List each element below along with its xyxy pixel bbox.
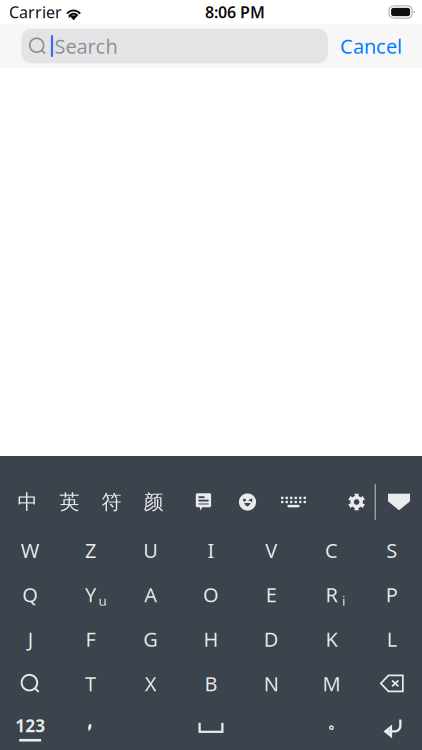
button[interactable]: 中 xyxy=(6,476,48,528)
staticText: M xyxy=(323,670,341,697)
staticText: i xyxy=(342,592,345,609)
staticText: Carrier xyxy=(9,1,62,23)
staticText: G xyxy=(143,626,158,652)
button[interactable]: I xyxy=(181,528,241,572)
button[interactable]: X xyxy=(121,661,181,706)
button[interactable]: N xyxy=(241,661,301,706)
button[interactable]: Y xyxy=(60,572,121,617)
staticText: Z xyxy=(85,537,96,563)
button[interactable]: Comma xyxy=(60,706,121,750)
button[interactable]: Q xyxy=(0,572,60,617)
button[interactable]: J xyxy=(0,617,60,661)
staticText: O xyxy=(203,581,219,608)
staticText: u xyxy=(98,592,106,609)
staticText: A xyxy=(144,581,157,608)
button[interactable]: P xyxy=(362,572,422,617)
staticText: 123 xyxy=(15,714,45,737)
button[interactable]: S xyxy=(362,528,422,572)
staticText: H xyxy=(203,626,218,652)
button[interactable]: 英 xyxy=(48,476,90,528)
staticText: D xyxy=(264,626,279,652)
staticText: 颜 xyxy=(143,490,163,514)
staticText: Cancel xyxy=(340,33,402,59)
staticText: E xyxy=(266,581,277,608)
button[interactable]: B xyxy=(181,661,241,706)
staticText: Y xyxy=(85,581,96,608)
button[interactable]: K xyxy=(301,617,362,661)
button[interactable]: U xyxy=(121,528,181,572)
button[interactable]: 符 xyxy=(90,476,132,528)
button[interactable]: Search xyxy=(0,661,60,706)
button[interactable]: G xyxy=(121,617,181,661)
button[interactable]: C xyxy=(301,528,362,572)
staticText: C xyxy=(325,537,338,563)
button[interactable]: O xyxy=(181,572,241,617)
staticText: S xyxy=(386,537,397,563)
staticText: N xyxy=(264,670,279,697)
button[interactable]: H xyxy=(181,617,241,661)
staticText: U xyxy=(143,537,158,563)
staticText: 英 xyxy=(59,490,79,514)
staticText: P xyxy=(386,581,398,608)
staticText: Search xyxy=(55,33,118,59)
button[interactable]: Delete xyxy=(362,661,422,706)
staticText: B xyxy=(204,670,217,697)
button[interactable]: Keyboard layout xyxy=(269,476,317,528)
staticText: Q xyxy=(22,581,38,608)
staticText: W xyxy=(21,537,40,563)
button[interactable]: L xyxy=(362,617,422,661)
button[interactable]: Numbers xyxy=(0,706,60,750)
button[interactable]: Hide keyboard xyxy=(376,476,422,528)
button[interactable]: Cancel xyxy=(340,33,402,59)
staticText: R xyxy=(326,581,338,608)
button[interactable]: Space xyxy=(121,706,301,750)
staticText: T xyxy=(85,670,96,697)
staticText: 8:06 PM xyxy=(205,1,265,23)
button[interactable]: R xyxy=(301,572,362,617)
staticText: V xyxy=(265,537,277,563)
button[interactable]: V xyxy=(241,528,301,572)
button[interactable]: F xyxy=(60,617,121,661)
button[interactable]: 颜 xyxy=(132,476,174,528)
button[interactable]: M xyxy=(301,661,362,706)
button[interactable]: Notes xyxy=(181,476,225,528)
button[interactable]: A xyxy=(121,572,181,617)
staticText: 中 xyxy=(17,490,37,514)
button[interactable]: Emoji xyxy=(225,476,269,528)
staticText: J xyxy=(28,626,33,652)
button[interactable]: Return xyxy=(362,706,422,750)
button[interactable]: Z xyxy=(60,528,121,572)
button[interactable]: T xyxy=(60,661,121,706)
staticText: L xyxy=(387,626,397,652)
button[interactable]: D xyxy=(241,617,301,661)
staticText: F xyxy=(85,626,95,652)
button[interactable]: E xyxy=(241,572,301,617)
staticText: K xyxy=(326,626,338,652)
button[interactable]: Period xyxy=(301,706,362,750)
button[interactable]: W xyxy=(0,528,60,572)
staticText: X xyxy=(145,670,157,697)
staticText: I xyxy=(207,537,214,563)
staticText: 符 xyxy=(101,490,121,514)
button[interactable]: Settings xyxy=(339,476,375,528)
